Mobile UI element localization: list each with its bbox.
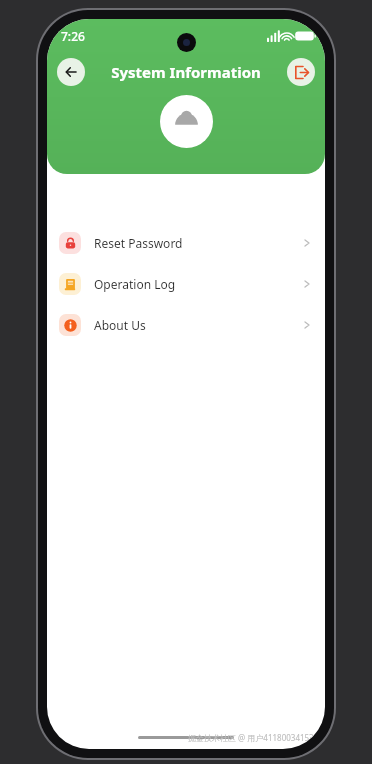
button[interactable]: Operation Log (47, 263, 325, 304)
button[interactable]: Reset Password (47, 222, 325, 263)
button[interactable]: Log out (287, 58, 315, 86)
staticText: Reset Password (94, 235, 183, 251)
staticText: 掘金技术社区 @ 用户4118003415341 (188, 732, 323, 743)
staticText: 7:26 (61, 28, 85, 44)
staticText: System Information (111, 62, 261, 82)
staticText: Operation Log (94, 276, 176, 292)
staticText: About Us (94, 317, 146, 333)
button[interactable]: Back (57, 58, 85, 86)
button[interactable]: Profile avatar (160, 95, 213, 148)
button[interactable]: About Us (47, 304, 325, 345)
